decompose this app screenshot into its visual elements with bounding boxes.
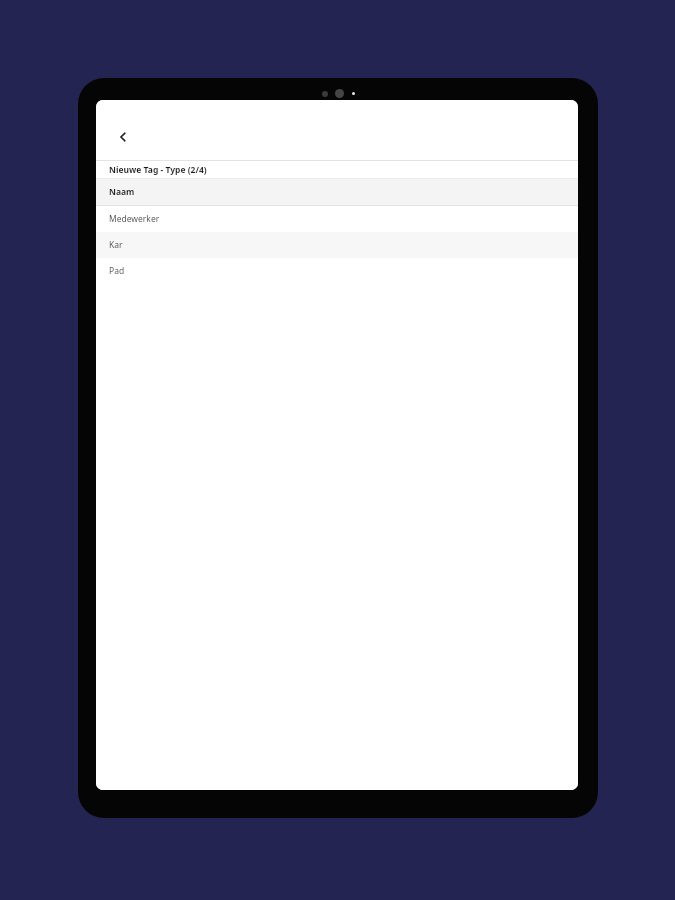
staticText: Naam: [109, 186, 135, 198]
button[interactable]: Medewerker: [96, 206, 578, 232]
button[interactable]: Back: [108, 122, 138, 152]
staticText: Medewerker: [109, 213, 160, 225]
button[interactable]: Pad: [96, 258, 578, 284]
staticText: Pad: [109, 265, 125, 277]
staticText: Nieuwe Tag - Type (2/4): [109, 164, 207, 176]
button[interactable]: Naam: [96, 179, 578, 205]
staticText: Kar: [109, 239, 123, 251]
button[interactable]: Kar: [96, 232, 578, 258]
